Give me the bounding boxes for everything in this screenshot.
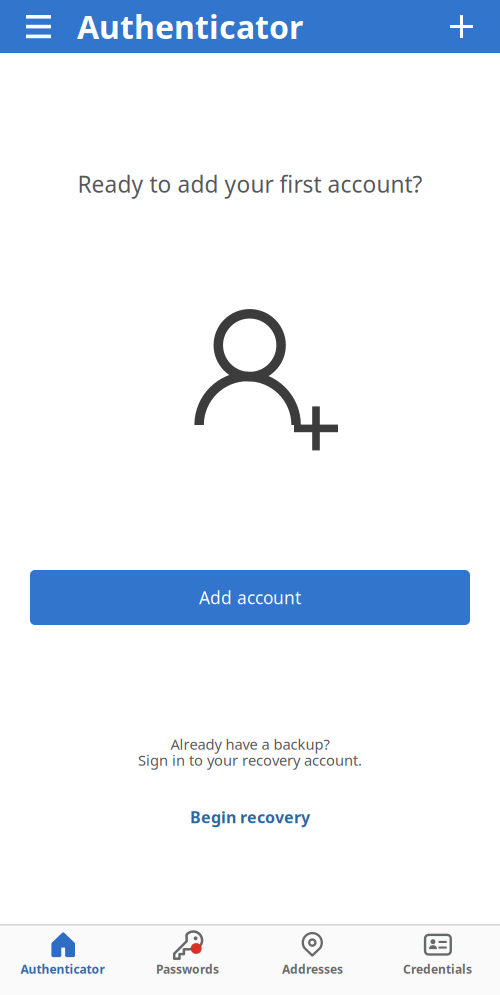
button[interactable]: Add account (30, 570, 470, 625)
staticText: Addresses (282, 961, 343, 977)
button[interactable]: Credentials (375, 924, 500, 995)
button[interactable]: Menu (13, 0, 64, 53)
staticText: Ready to add your first account? (77, 169, 422, 199)
staticText: Begin recovery (190, 806, 310, 828)
button[interactable]: Begin recovery (160, 802, 340, 832)
staticText: Sign in to your recovery account. (138, 750, 362, 770)
button[interactable]: Authenticator (0, 924, 125, 995)
staticText: Add account (199, 586, 301, 609)
staticText: Authenticator (20, 961, 104, 977)
staticText: Authenticator (77, 5, 303, 48)
staticText: Credentials (403, 961, 472, 977)
staticText: Passwords (156, 961, 219, 977)
button[interactable]: Passwords (125, 924, 250, 995)
staticText: Already have a backup? (170, 734, 329, 754)
button[interactable]: Addresses (250, 924, 375, 995)
button[interactable]: Add account (438, 0, 485, 53)
